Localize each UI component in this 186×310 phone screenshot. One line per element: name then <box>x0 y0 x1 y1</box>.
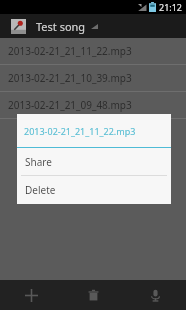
button[interactable]: Add <box>0 280 62 310</box>
button[interactable]: Test song <box>0 14 186 38</box>
button[interactable]: 2013-02-21_21_10_39.mp3 <box>0 65 186 91</box>
staticText: 21:12 <box>159 1 183 13</box>
button[interactable]: Share <box>17 148 171 175</box>
staticText: 2013-02-21_21_11_22.mp3 <box>8 44 132 58</box>
button[interactable]: Delete <box>17 176 171 203</box>
button[interactable]: Record <box>124 280 186 310</box>
button[interactable]: Delete <box>62 280 124 310</box>
staticText: Delete <box>25 183 56 197</box>
staticText: Share <box>25 155 52 169</box>
button[interactable]: 2013-02-21_21_09_48.mp3 <box>0 92 186 118</box>
staticText: 2013-02-21_21_09_48.mp3 <box>8 98 132 112</box>
button[interactable]: 2013-02-21_21_11_22.mp3 <box>0 38 186 64</box>
staticText: 2013-02-21_21_10_39.mp3 <box>8 71 132 85</box>
staticText: 2013-02-21_21_11_22.mp3 <box>24 125 136 137</box>
staticText: Test song <box>36 19 86 34</box>
